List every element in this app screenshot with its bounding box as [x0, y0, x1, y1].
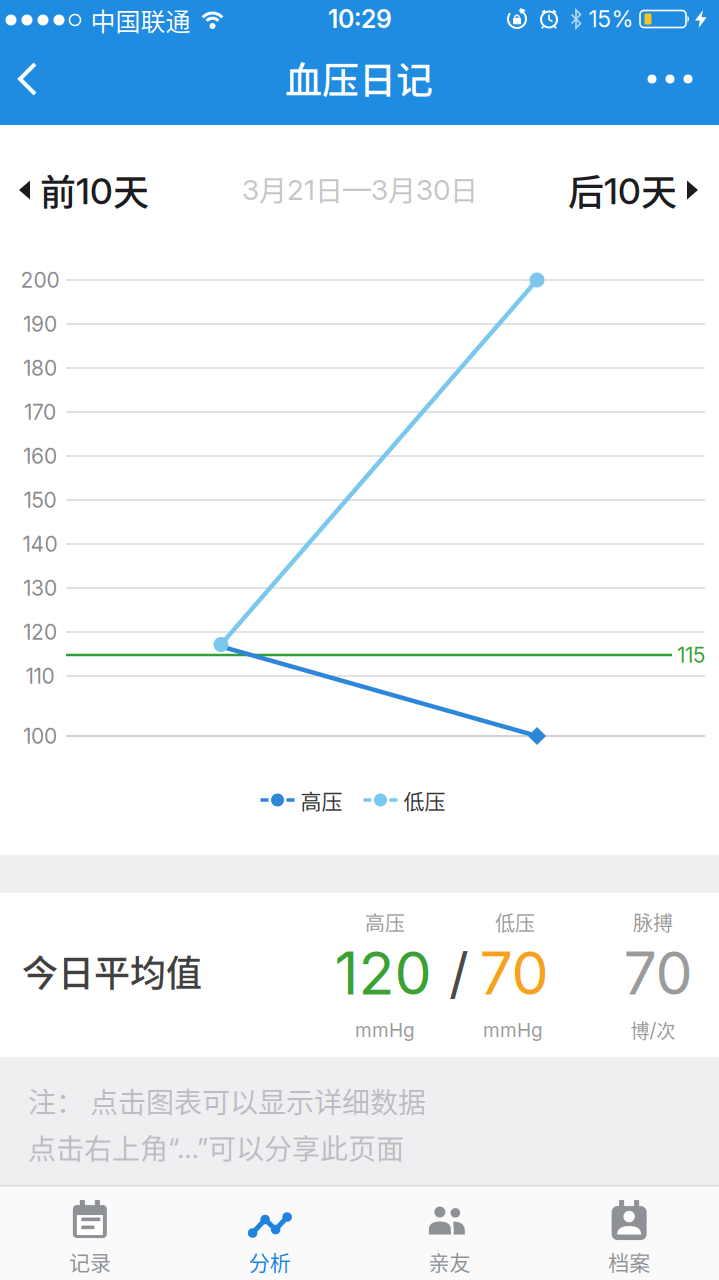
staticText: 低压	[403, 785, 445, 815]
staticText: 100	[23, 723, 57, 749]
staticText: 高压	[365, 907, 405, 936]
button[interactable]: 前10天	[19, 164, 149, 216]
button[interactable]: 记录	[0, 1186, 180, 1280]
staticText: 低压	[495, 907, 535, 936]
staticText: 150	[23, 487, 56, 513]
staticText: mmHg	[483, 1018, 543, 1041]
staticText: 记录	[69, 1246, 111, 1276]
staticText: 120	[23, 619, 57, 645]
staticText: 120	[334, 937, 431, 1009]
staticText: 脉搏	[633, 907, 673, 936]
staticText: 注： 点击图表可以显示详细数据	[28, 1080, 426, 1121]
staticText: 160	[23, 443, 57, 469]
staticText: 点击右上角“…”可以分享此页面	[28, 1127, 404, 1167]
staticText: 中国联通	[90, 2, 190, 38]
staticText: 今日平均值	[22, 945, 202, 997]
button[interactable]: 后10天	[568, 164, 698, 216]
staticText: 170	[24, 399, 56, 425]
staticText: 博/次	[630, 1016, 675, 1044]
staticText: 110	[25, 663, 54, 689]
staticText: 高压	[300, 785, 342, 815]
button[interactable]: More	[638, 57, 702, 101]
staticText: 分析	[249, 1246, 291, 1276]
staticText: mmHg	[355, 1018, 415, 1041]
staticText: 200	[20, 267, 59, 293]
staticText: 70	[623, 937, 692, 1009]
staticText: 档案	[608, 1246, 650, 1276]
staticText: 亲友	[428, 1246, 470, 1276]
staticText: 后10天	[568, 164, 677, 216]
button[interactable]: 亲友	[359, 1186, 539, 1280]
staticText: 180	[23, 355, 57, 381]
staticText: 190	[23, 311, 57, 337]
staticText: /	[449, 940, 469, 1006]
staticText: 3月21日—3月30日	[242, 169, 478, 209]
staticText: 130	[23, 575, 57, 601]
button[interactable]: 分析	[180, 1186, 360, 1280]
staticText: 140	[22, 531, 57, 557]
staticText: 前10天	[40, 164, 149, 216]
staticText: 10:29	[328, 4, 392, 34]
staticText: 115	[677, 642, 705, 668]
button[interactable]: Back	[8, 57, 52, 101]
staticText: 70	[479, 937, 548, 1009]
button[interactable]: 档案	[539, 1186, 719, 1280]
staticText: 15%	[588, 5, 633, 33]
staticText: 血压日记	[285, 51, 433, 105]
